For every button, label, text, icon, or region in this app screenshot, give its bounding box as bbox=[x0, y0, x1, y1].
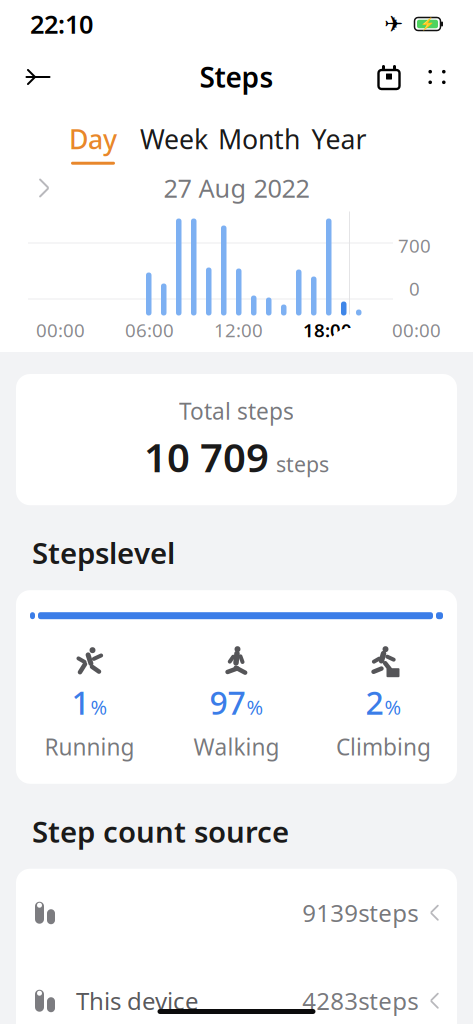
staticText: Week bbox=[140, 121, 208, 157]
staticText: Step count source bbox=[32, 812, 289, 851]
staticText: steps bbox=[276, 450, 329, 478]
button[interactable]: Week bbox=[138, 121, 210, 165]
staticText: Year bbox=[311, 121, 366, 157]
button[interactable]: Year bbox=[308, 121, 370, 165]
staticText: Walking bbox=[193, 732, 279, 762]
staticText: % bbox=[90, 694, 107, 720]
staticText: Stepslevel bbox=[32, 533, 175, 572]
staticText: 2 bbox=[365, 681, 383, 724]
button[interactable]: Calendar bbox=[369, 55, 409, 99]
staticText: 27 Aug 2022 bbox=[163, 171, 309, 205]
staticText: Day bbox=[69, 121, 117, 157]
staticText: ⚡ bbox=[420, 17, 435, 31]
button[interactable]: Day bbox=[62, 121, 124, 165]
staticText: 06:00 bbox=[125, 318, 174, 342]
staticText: 700 bbox=[398, 233, 431, 258]
staticText: 22:10 bbox=[30, 7, 93, 41]
button[interactable]: Previous day bbox=[22, 170, 66, 206]
staticText: 00:00 bbox=[36, 318, 85, 342]
staticText: Total steps bbox=[179, 396, 294, 426]
staticText: Steps bbox=[199, 58, 273, 96]
staticText: 18:00 bbox=[303, 318, 352, 342]
staticText: ✈ bbox=[384, 11, 403, 37]
button[interactable]: More options bbox=[417, 55, 457, 99]
button[interactable] bbox=[16, 869, 457, 957]
staticText: 00:00 bbox=[392, 318, 441, 342]
staticText: 9139steps bbox=[302, 897, 418, 929]
staticText: Month bbox=[218, 121, 300, 157]
staticText: 0 bbox=[409, 276, 420, 301]
staticText: % bbox=[384, 694, 401, 720]
button[interactable]: Back bbox=[16, 55, 60, 99]
button[interactable]: This device bbox=[16, 957, 457, 1024]
staticText: 4283steps bbox=[302, 985, 418, 1017]
staticText: % bbox=[246, 694, 263, 720]
staticText: Climbing bbox=[336, 732, 431, 762]
staticText: 10 709 bbox=[144, 430, 269, 483]
staticText: 12:00 bbox=[214, 318, 263, 342]
button[interactable]: Month bbox=[218, 121, 300, 165]
staticText: 97 bbox=[209, 681, 245, 724]
staticText: This device bbox=[76, 985, 199, 1017]
staticText: 1 bbox=[71, 681, 89, 724]
staticText: Running bbox=[44, 732, 134, 762]
